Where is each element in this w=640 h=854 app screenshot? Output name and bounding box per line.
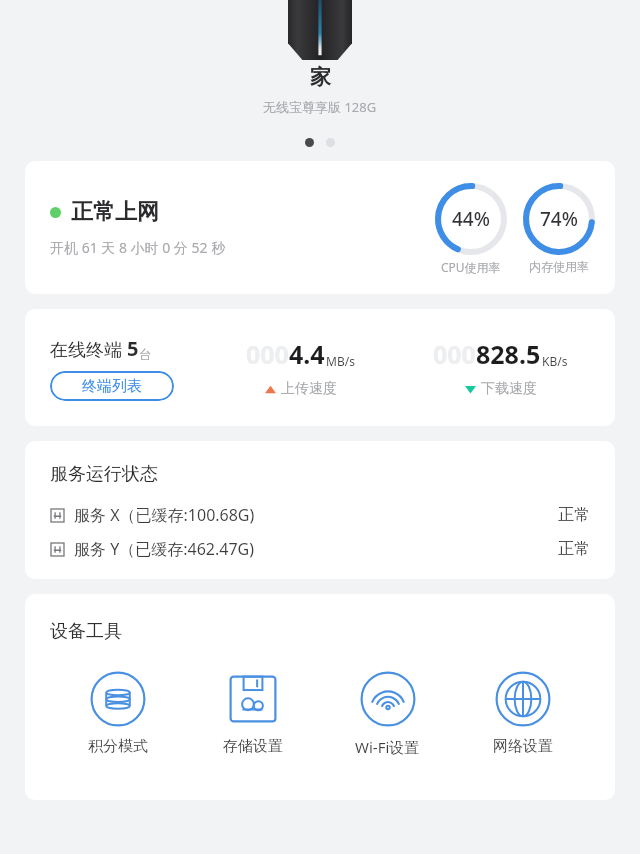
staticText: 74% — [540, 206, 578, 232]
staticText: 000 — [433, 337, 476, 371]
staticText: 4.4 — [289, 337, 325, 371]
button[interactable]: 存储设置 — [185, 671, 320, 756]
staticText: 网络设置 — [493, 737, 553, 756]
button[interactable]: Wi-Fi设置 — [320, 671, 455, 757]
staticText: MB/s — [326, 353, 355, 369]
button[interactable]: 服务 X（已缓存:100.68G) — [50, 504, 590, 526]
staticText: 在线终端 — [50, 337, 127, 362]
staticText: 内存使用率 — [529, 259, 589, 274]
button[interactable]: 积分模式 — [50, 671, 185, 756]
staticText: 服务运行状态 — [50, 463, 158, 486]
staticText: 存储设置 — [223, 737, 283, 756]
staticText: 设备工具 — [50, 620, 122, 643]
staticText: 正常 — [558, 539, 590, 559]
staticText: 正常 — [558, 505, 590, 525]
staticText: 终端列表 — [82, 377, 142, 396]
staticText: 下载速度 — [481, 380, 537, 398]
staticText: 上传速度 — [281, 380, 337, 398]
button[interactable]: 网络设置 — [455, 671, 590, 756]
staticText: 无线宝尊享版 128G — [263, 98, 377, 116]
staticText: Wi-Fi设置 — [355, 737, 420, 757]
staticText: KB/s — [542, 353, 568, 369]
staticText: 台 — [139, 346, 152, 362]
staticText: 44% — [452, 206, 490, 232]
staticText: 服务 X（已缓存:100.68G) — [74, 504, 255, 526]
staticText: 服务 Y（已缓存:462.47G) — [74, 538, 255, 560]
staticText: 5 — [127, 335, 139, 362]
staticText: 开机 61 天 8 小时 0 分 52 秒 — [50, 238, 226, 257]
staticText: 正常上网 — [71, 198, 159, 226]
button[interactable]: 终端列表 — [50, 371, 174, 401]
button[interactable]: 服务 Y（已缓存:462.47G) — [50, 538, 590, 560]
staticText: 家 — [310, 64, 331, 90]
staticText: 000 — [246, 337, 289, 371]
staticText: 积分模式 — [88, 737, 148, 756]
staticText: CPU使用率 — [441, 259, 501, 275]
staticText: 828.5 — [476, 337, 541, 371]
